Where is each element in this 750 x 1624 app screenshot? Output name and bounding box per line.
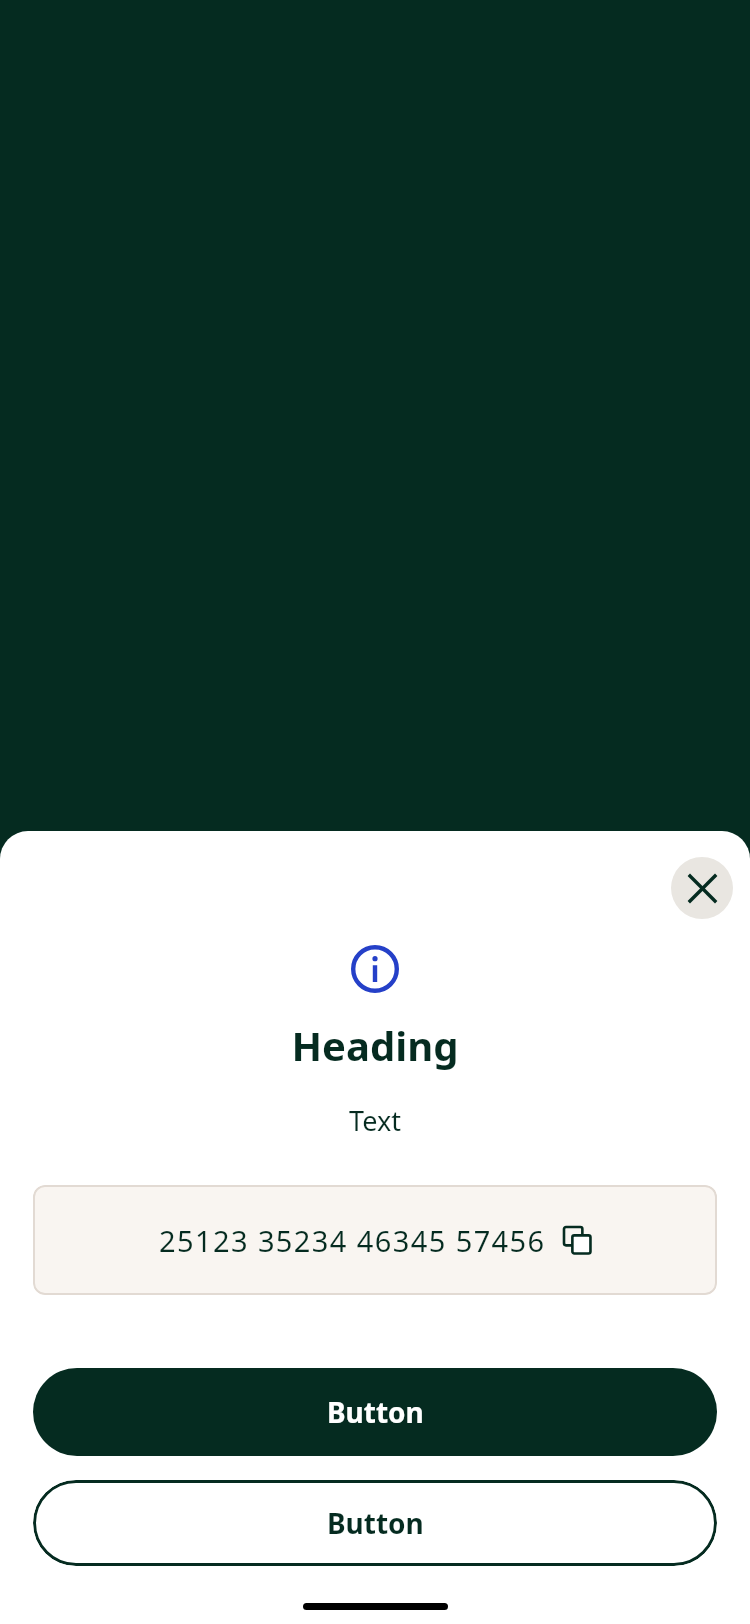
button[interactable]: Button [33, 1480, 717, 1566]
staticText: Button [327, 1504, 424, 1542]
staticText: 25123 35234 46345 57456 [159, 1221, 546, 1260]
staticText: Button [327, 1393, 424, 1431]
button[interactable]: Close [671, 857, 733, 919]
staticText: Heading [0, 1018, 750, 1072]
staticText: Text [0, 1102, 750, 1139]
button[interactable]: Button [33, 1368, 717, 1456]
button[interactable]: 25123 35234 46345 57456 [33, 1185, 717, 1295]
